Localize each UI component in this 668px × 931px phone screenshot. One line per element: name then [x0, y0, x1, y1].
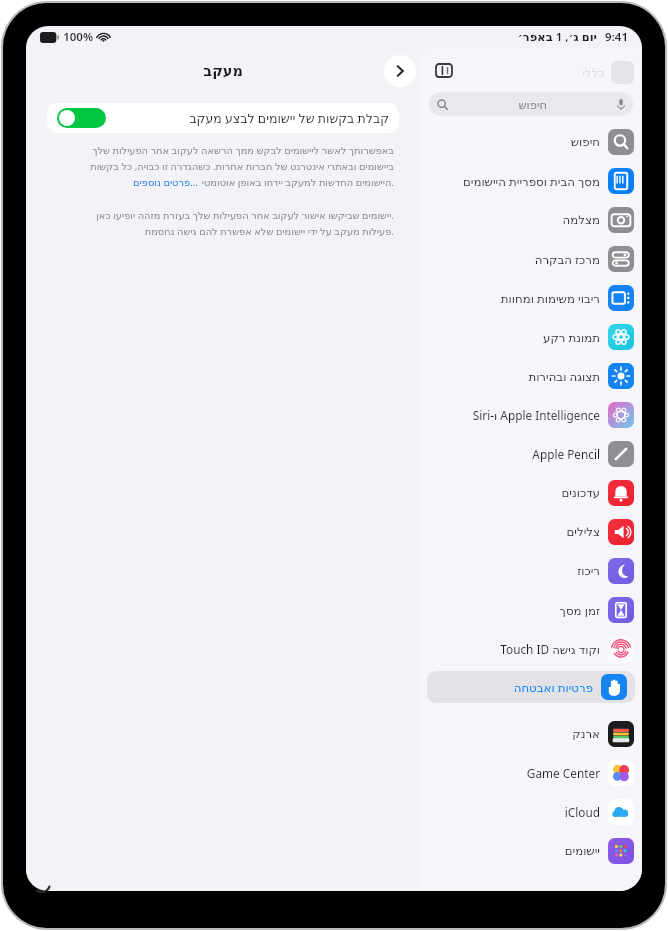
button[interactable]: מסך הבית וספריית היישומים	[420, 168, 642, 194]
button[interactable]: iCloud	[420, 799, 642, 825]
staticText: יום ג׳, 1 באפר׳	[517, 29, 597, 45]
staticText: באפשרותך לאשר ליישומים לבקש ממך הרשאה לע…	[92, 144, 394, 157]
staticText: מעקב	[203, 63, 243, 80]
staticText: 9:41	[605, 29, 628, 45]
button[interactable]: Touch ID וקוד גישה	[420, 636, 642, 662]
staticText: ריבוי משימות ומחוות	[500, 290, 600, 306]
button[interactable]: ריכוז	[420, 558, 642, 584]
button[interactable]: תמונת רקע	[420, 324, 642, 350]
staticText: ביישומים ובאתרי אינטרנט של חברות אחרות. …	[90, 160, 394, 173]
button[interactable]: ריבוי משימות ומחוות	[420, 285, 642, 311]
staticText: מצלמה	[562, 213, 600, 227]
button[interactable]: יישומים	[420, 838, 642, 864]
button[interactable]: זמן מסך	[420, 597, 642, 623]
staticText: תצוגה ובהירות	[528, 368, 600, 384]
staticText: iCloud	[564, 804, 600, 820]
staticText: פרטיות ואבטחה	[513, 679, 593, 695]
button[interactable]: עדכונים	[420, 480, 642, 506]
button[interactable]: Game Center	[420, 760, 642, 786]
staticText: מרכז הבקרה	[534, 251, 600, 267]
button[interactable]: מצלמה	[420, 207, 642, 233]
button[interactable]: Siri-ו Apple Intelligence	[420, 402, 642, 428]
staticText: חיפוש	[518, 98, 547, 111]
button[interactable]: צלילים	[420, 519, 642, 545]
staticText: חיפוש	[570, 135, 600, 149]
staticText: Siri-ו Apple Intelligence	[472, 407, 600, 423]
staticText: פעילות מעקב על ידי יישומים שלא אפשרת להם…	[144, 225, 394, 238]
button[interactable]: Forward	[384, 55, 416, 87]
button[interactable]: ארנק	[420, 721, 642, 747]
staticText: ריכוז	[577, 564, 600, 578]
button[interactable]: חיפוש	[420, 129, 642, 155]
staticText: קבלת בקשות של יישומים לבצע מעקב	[189, 110, 389, 127]
button[interactable]: קבלת בקשות של יישומים לבצע מעקב	[47, 103, 399, 133]
staticText: זמן מסך	[559, 602, 600, 618]
staticText: תמונת רקע	[543, 329, 600, 345]
button[interactable]: Apple Pencil	[420, 441, 642, 467]
button[interactable]: תצוגה ובהירות	[420, 363, 642, 389]
staticText: יישומים	[564, 844, 600, 858]
staticText: Game Center	[526, 765, 600, 781]
staticText: היישומים החדשות למעקב יידחו באופן אוטומט…	[201, 176, 394, 189]
staticText: עדכונים	[561, 486, 600, 500]
staticText: צלילים	[566, 525, 600, 539]
staticText: מסך הבית וספריית היישומים	[462, 173, 600, 189]
button[interactable]: מרכז הבקרה	[420, 246, 642, 272]
staticText: כללי	[582, 66, 604, 79]
button[interactable]: פרטיות ואבטחה	[427, 671, 635, 703]
staticText: 100%	[63, 29, 93, 45]
staticText: יישומים שביקשו אישור לעקוב אחר הפעילות ש…	[96, 209, 394, 222]
staticText: ארנק	[572, 727, 600, 741]
button[interactable]: חיפוש	[429, 92, 633, 116]
button[interactable]: פרטים נוספים...	[133, 176, 198, 189]
staticText: Touch ID וקוד גישה	[500, 641, 600, 657]
staticText: Apple Pencil	[532, 446, 600, 462]
button[interactable]: Toggle sidebar	[434, 60, 454, 80]
